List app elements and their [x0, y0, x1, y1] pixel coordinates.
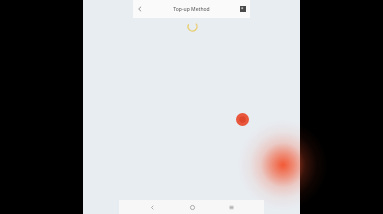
- button[interactable]: Action: [236, 113, 249, 126]
- button[interactable]: Back: [146, 201, 158, 213]
- button[interactable]: Back: [133, 2, 147, 16]
- button[interactable]: Recent apps: [225, 201, 237, 213]
- button[interactable]: More options: [236, 2, 250, 16]
- button[interactable]: Home: [186, 201, 198, 213]
- staticText: Top-up Method: [173, 6, 210, 13]
